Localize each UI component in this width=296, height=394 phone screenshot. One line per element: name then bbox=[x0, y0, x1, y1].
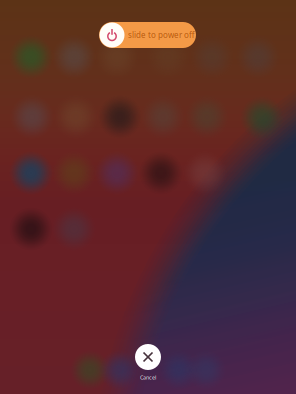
button[interactable]: slide to power off bbox=[99, 22, 196, 48]
staticText: slide to power off bbox=[128, 30, 195, 40]
staticText: Cancel bbox=[140, 374, 156, 381]
button[interactable]: Cancel bbox=[108, 344, 188, 381]
